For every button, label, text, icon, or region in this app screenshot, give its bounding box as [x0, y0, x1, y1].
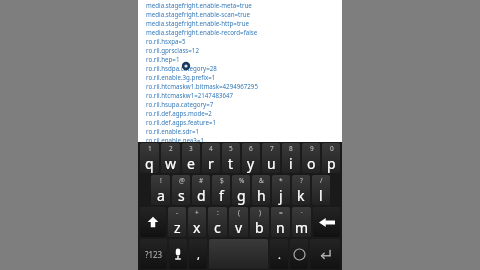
- staticText: ): [259, 208, 261, 217]
- button[interactable]: /: [312, 175, 330, 205]
- button[interactable]: 3: [182, 143, 200, 173]
- staticText: media.stagefright.enable-record=false: [146, 28, 258, 36]
- button[interactable]: Space: [209, 239, 268, 269]
- staticText: n: [276, 218, 285, 237]
- button[interactable]: Shift: [140, 207, 166, 237]
- staticText: media.stagefright.enable-scan=true: [146, 10, 251, 18]
- staticText: j: [279, 186, 283, 205]
- staticText: d: [197, 186, 206, 205]
- staticText: +: [195, 208, 199, 217]
- staticText: ro.ril.hsxpa=5: [146, 37, 186, 45]
- staticText: ro.ril.enable.fd.plmn.prefix=23410,23415…: [146, 145, 284, 153]
- staticText: w: [165, 154, 177, 173]
- button[interactable]: Backspace: [313, 207, 340, 237]
- staticText: ro.ril.htcmaskw1=2147483647: [146, 91, 234, 99]
- staticText: media.stagefright.enable-meta=true: [146, 1, 252, 9]
- button[interactable]: (: [229, 207, 248, 237]
- staticText: %: [239, 176, 245, 185]
- button[interactable]: ): [250, 207, 269, 237]
- staticText: ro.ril.enable.a52=0: [146, 153, 201, 160]
- staticText: ro.ril.htcmaskw1.bitmask=4294967295: [146, 82, 258, 90]
- staticText: ·: [301, 208, 303, 217]
- button[interactable]: 2: [161, 143, 180, 173]
- staticText: f: [219, 186, 224, 205]
- button[interactable]: #: [192, 175, 210, 205]
- staticText: ro.ril.enable.3g.prefix=1: [146, 73, 216, 81]
- staticText: (: [238, 208, 240, 217]
- staticText: ro.ril.def.agps.mode=2: [146, 109, 212, 117]
- staticText: 9: [310, 144, 314, 153]
- button[interactable]: &: [252, 175, 270, 205]
- staticText: h: [257, 186, 266, 205]
- staticText: 4: [209, 144, 213, 153]
- button[interactable]: ,: [189, 239, 207, 269]
- staticText: p: [327, 154, 336, 173]
- staticText: 2: [169, 144, 173, 153]
- staticText: ,: [197, 247, 200, 262]
- staticText: e: [187, 154, 195, 173]
- staticText: ro.ril.def.agps.feature=1: [146, 118, 217, 126]
- staticText: y: [247, 154, 255, 173]
- button[interactable]: !: [151, 175, 170, 205]
- staticText: k: [297, 186, 305, 205]
- button[interactable]: $: [212, 175, 230, 205]
- staticText: 6: [249, 144, 253, 153]
- staticText: u: [267, 154, 276, 173]
- staticText: 7: [270, 144, 274, 153]
- staticText: z: [174, 218, 181, 237]
- staticText: 8: [289, 144, 293, 153]
- staticText: 0: [330, 144, 334, 153]
- staticText: ro.ril.enable.gea3=1: [146, 136, 204, 144]
- button[interactable]: =: [271, 207, 290, 237]
- staticText: m: [295, 218, 309, 237]
- button[interactable]: @: [172, 175, 190, 205]
- staticText: g: [237, 186, 246, 205]
- staticText: q: [145, 154, 154, 173]
- staticText: &: [259, 176, 264, 185]
- staticText: c: [214, 218, 221, 237]
- staticText: =: [279, 208, 283, 217]
- button[interactable]: %: [232, 175, 250, 205]
- staticText: s: [178, 186, 185, 205]
- staticText: :: [217, 208, 219, 217]
- button[interactable]: 6: [242, 143, 260, 173]
- button[interactable]: Smiley: [290, 239, 308, 269]
- staticText: x: [193, 218, 201, 237]
- button[interactable]: Voice input: [169, 239, 187, 269]
- staticText: l: [319, 186, 323, 205]
- button[interactable]: 7: [262, 143, 280, 173]
- button[interactable]: 9: [302, 143, 320, 173]
- staticText: /: [320, 176, 323, 185]
- staticText: -: [176, 208, 179, 217]
- staticText: ro.ril.hsdpa.category=28: [146, 64, 217, 72]
- button[interactable]: *: [272, 175, 290, 205]
- button[interactable]: 5: [222, 143, 240, 173]
- staticText: .: [278, 247, 281, 262]
- button[interactable]: ?: [292, 175, 310, 205]
- staticText: ro.ril.hep=1: [146, 55, 180, 63]
- staticText: media.stagefright.enable-http=true: [146, 19, 249, 27]
- button[interactable]: ·: [292, 207, 311, 237]
- button[interactable]: -: [168, 207, 186, 237]
- staticText: v: [235, 218, 243, 237]
- staticText: !: [160, 176, 162, 185]
- staticText: a: [157, 186, 165, 205]
- staticText: 3: [189, 144, 193, 153]
- staticText: i: [289, 154, 293, 173]
- staticText: @: [179, 176, 185, 185]
- button[interactable]: 8: [282, 143, 300, 173]
- button[interactable]: .: [270, 239, 288, 269]
- staticText: ro.ril.gprsclass=12: [146, 46, 199, 54]
- button[interactable]: 1: [140, 143, 159, 173]
- staticText: r: [208, 154, 214, 173]
- staticText: ro.ril.hsupa.category=7: [146, 100, 214, 108]
- staticText: #: [199, 176, 204, 185]
- button[interactable]: 4: [202, 143, 220, 173]
- staticText: b: [255, 218, 264, 237]
- staticText: ?: [300, 176, 303, 185]
- button[interactable]: 0: [322, 143, 340, 173]
- button[interactable]: :: [208, 207, 227, 237]
- button[interactable]: Symbols: [140, 239, 167, 269]
- button[interactable]: Enter: [310, 239, 340, 269]
- button[interactable]: +: [188, 207, 206, 237]
